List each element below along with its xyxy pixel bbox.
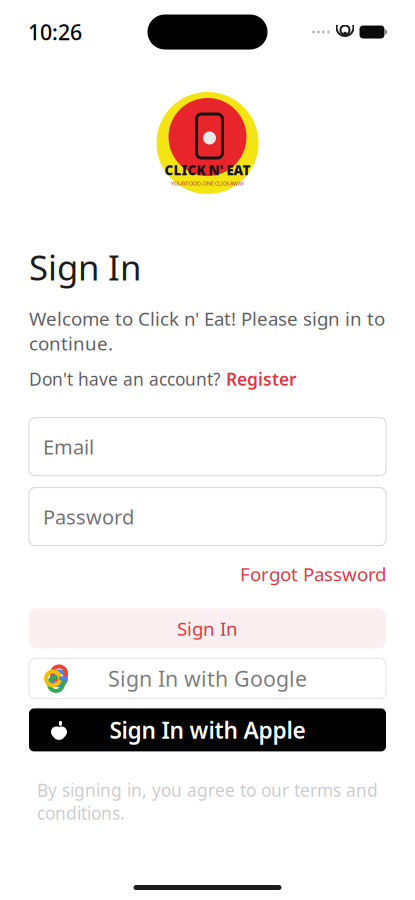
staticText: Sign In xyxy=(29,244,141,290)
staticText: Password xyxy=(43,503,134,530)
button[interactable]: Sign In with Apple xyxy=(29,708,386,751)
staticText: Welcome to Click n' Eat! Please sign in … xyxy=(29,306,385,356)
staticText: YOUR FOOD, ONE CLICK AWAY xyxy=(171,180,244,187)
staticText: CLICK N' EAT xyxy=(164,161,250,179)
staticText: Sign In with Apple xyxy=(109,715,305,745)
button[interactable]: Password xyxy=(29,488,386,546)
staticText: Register xyxy=(226,368,297,391)
button[interactable]: Sign In with Google xyxy=(29,658,386,698)
staticText: Don't have an account? xyxy=(29,368,221,391)
staticText: Sign In with Google xyxy=(108,664,307,693)
button[interactable]: Forgot Password xyxy=(240,562,386,586)
button[interactable]: Email xyxy=(29,418,386,476)
staticText: Sign In xyxy=(177,616,238,641)
staticText: By signing in, you agree to our terms an… xyxy=(37,778,378,824)
button[interactable]: Register xyxy=(226,368,297,391)
staticText: Forgot Password xyxy=(240,562,386,586)
staticText: Email xyxy=(43,433,94,460)
button[interactable]: Sign In xyxy=(29,608,386,648)
staticText: 10:26 xyxy=(28,18,82,46)
